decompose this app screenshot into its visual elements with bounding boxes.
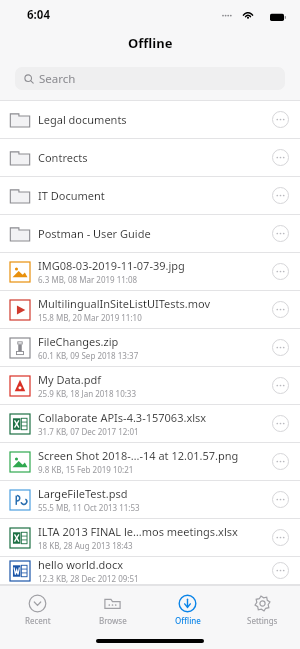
button[interactable]: More options: [270, 489, 291, 510]
staticText: 60.1 KB, 09 Sep 2018 13:37: [38, 350, 139, 361]
staticText: IT Document: [38, 188, 105, 203]
button[interactable]: My Data.pdf: [0, 367, 300, 405]
button[interactable]: More options: [270, 109, 291, 130]
button[interactable]: ILTA 2013 FINAL le…mos meetings.xlsx: [0, 519, 300, 557]
button[interactable]: LargeFileTest.psd: [0, 481, 300, 519]
staticText: Browse: [99, 615, 127, 626]
button[interactable]: More options: [270, 223, 291, 244]
staticText: Search: [39, 71, 76, 87]
staticText: MultilingualInSiteListUITests.mov: [38, 296, 210, 311]
staticText: FileChanges.zip: [38, 334, 119, 349]
button[interactable]: Offline: [150, 586, 225, 633]
staticText: Settings: [247, 615, 278, 626]
staticText: Legal documents: [38, 112, 127, 127]
staticText: Recent: [25, 615, 51, 626]
staticText: ILTA 2013 FINAL le…mos meetings.xlsx: [38, 524, 238, 539]
button[interactable]: More options: [270, 299, 291, 320]
staticText: Offline: [128, 34, 173, 52]
button[interactable]: Settings: [225, 586, 300, 633]
button[interactable]: More options: [270, 375, 291, 396]
button[interactable]: More options: [270, 337, 291, 358]
staticText: LargeFileTest.psd: [38, 486, 128, 501]
staticText: IMG08-03-2019-11-07-39.jpg: [38, 258, 185, 273]
staticText: Screen Shot 2018-…-14 at 12.01.57.png: [38, 448, 239, 463]
staticText: Offline: [175, 615, 201, 626]
staticText: 55.5 MB, 11 Oct 2013 11:53: [38, 502, 140, 513]
button[interactable]: Recent: [0, 586, 75, 633]
button[interactable]: Search: [15, 67, 285, 90]
staticText: 6:04: [27, 7, 50, 23]
staticText: Contrects: [38, 150, 88, 165]
staticText: Postman - User Guide: [38, 226, 151, 241]
button[interactable]: More options: [270, 527, 291, 548]
button[interactable]: More options: [270, 185, 291, 206]
staticText: 12.3 KB, 28 Dec 2012 09:51: [38, 573, 139, 584]
button[interactable]: Legal documents: [0, 101, 300, 139]
button[interactable]: Contrects: [0, 139, 300, 177]
staticText: Collaborate APIs-4.3-157063.xlsx: [38, 410, 207, 425]
button[interactable]: Postman - User Guide: [0, 215, 300, 253]
staticText: My Data.pdf: [38, 372, 102, 387]
button[interactable]: Collaborate APIs-4.3-157063.xlsx: [0, 405, 300, 443]
button[interactable]: IMG08-03-2019-11-07-39.jpg: [0, 253, 300, 291]
staticText: 6.3 MB, 08 Mar 2019 11:08: [38, 274, 138, 285]
button[interactable]: More options: [270, 451, 291, 472]
staticText: hello world.docx: [38, 557, 124, 572]
staticText: 25.9 KB, 18 Jan 2018 10:33: [38, 388, 137, 399]
staticText: 18 KB, 28 Aug 2013 18:43: [38, 540, 133, 551]
button[interactable]: More options: [270, 560, 291, 581]
button[interactable]: More options: [270, 147, 291, 168]
button[interactable]: FileChanges.zip: [0, 329, 300, 367]
button[interactable]: MultilingualInSiteListUITests.mov: [0, 291, 300, 329]
button[interactable]: More options: [270, 413, 291, 434]
staticText: 31.7 KB, 07 Dec 2017 12:01: [38, 426, 139, 437]
staticText: 15.8 MB, 20 Mar 2019 11:10: [38, 312, 142, 323]
button[interactable]: Browse: [75, 586, 150, 633]
button[interactable]: More options: [270, 261, 291, 282]
button[interactable]: hello world.docx: [0, 557, 300, 585]
staticText: 9.8 KB, 15 Feb 2019 10:21: [38, 464, 134, 475]
button[interactable]: Screen Shot 2018-…-14 at 12.01.57.png: [0, 443, 300, 481]
button[interactable]: IT Document: [0, 177, 300, 215]
